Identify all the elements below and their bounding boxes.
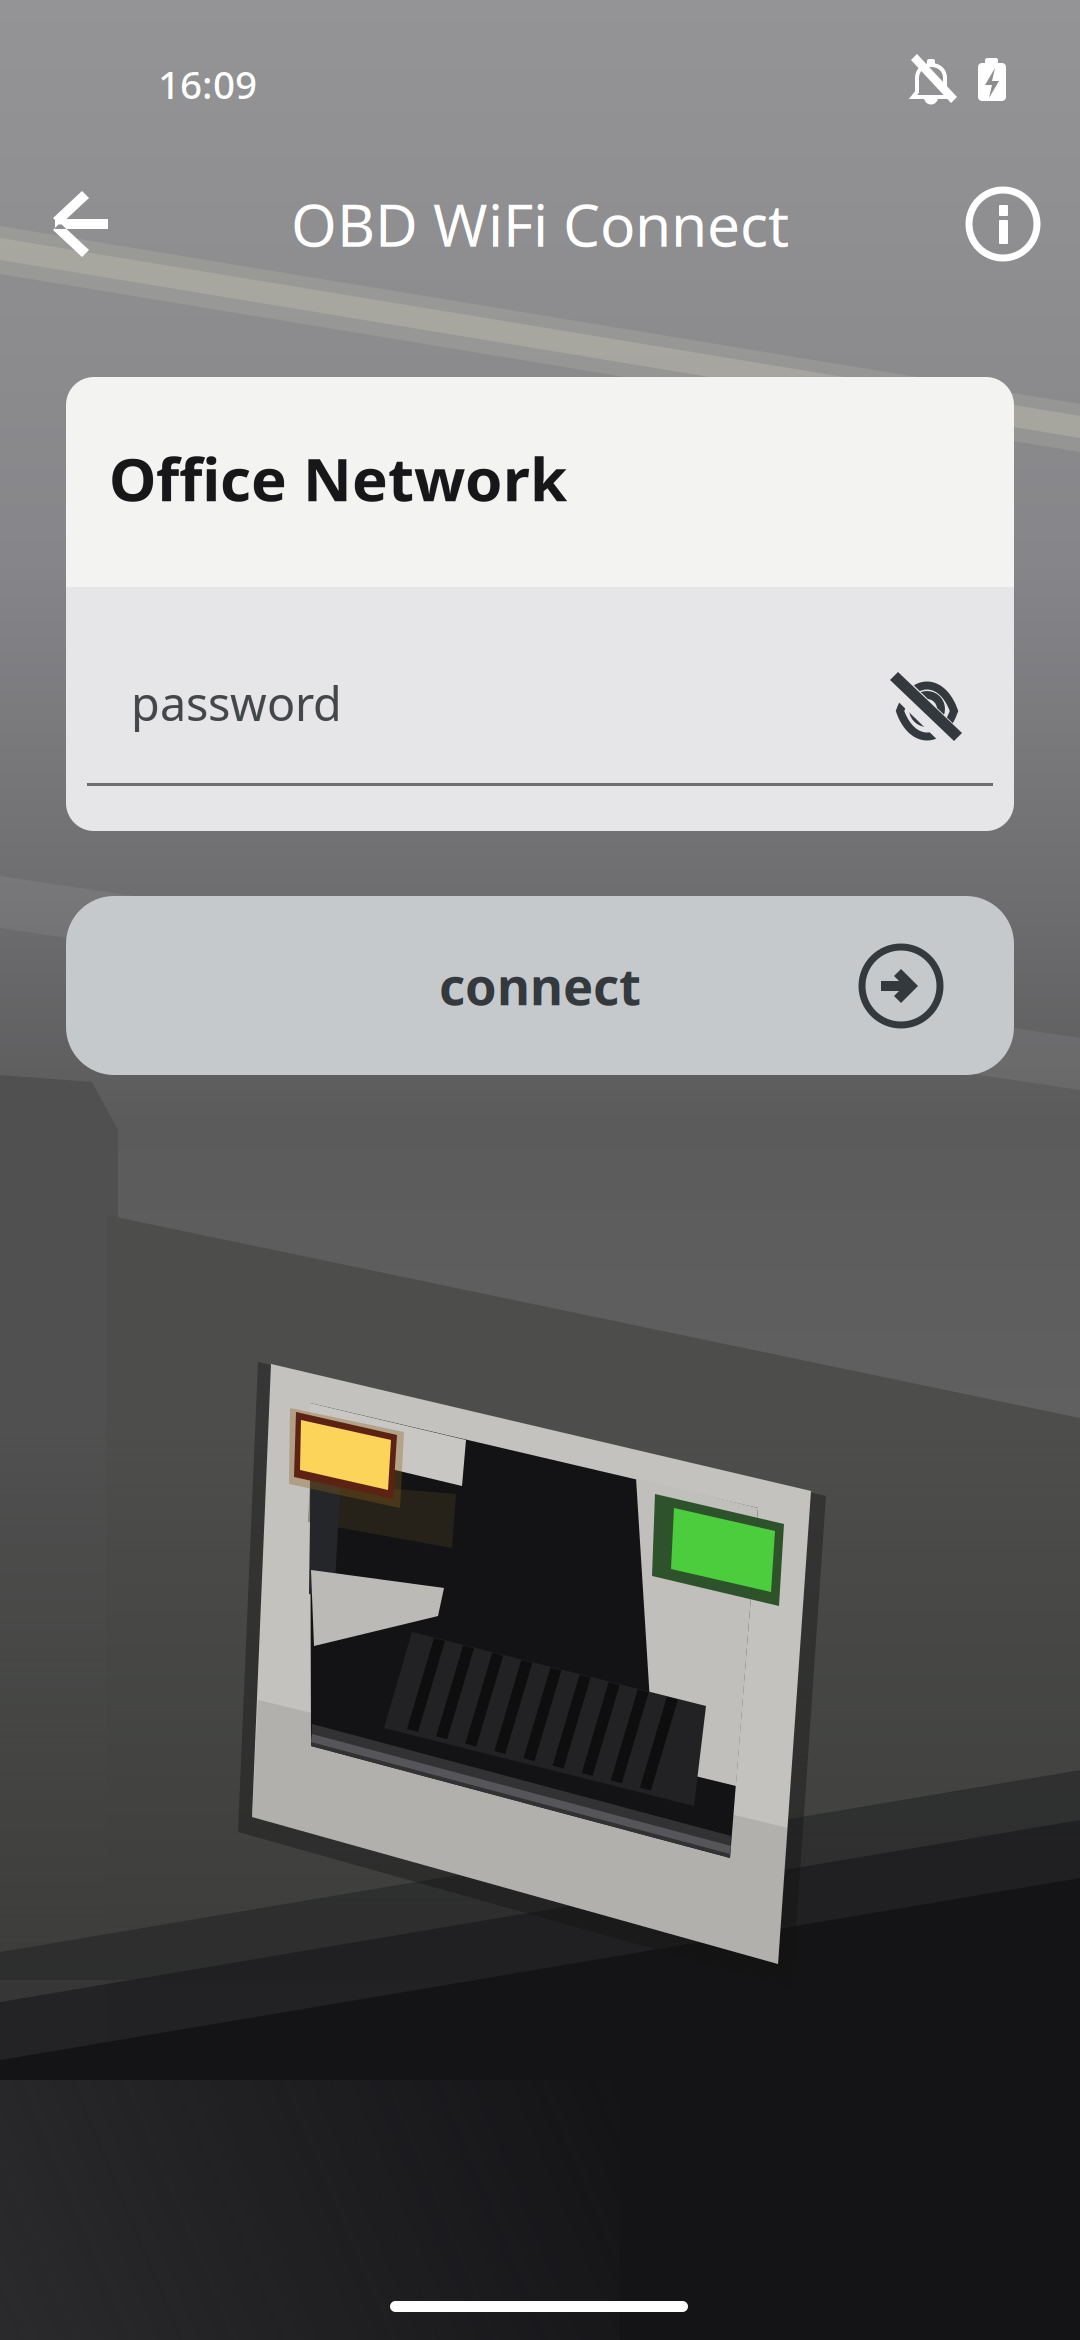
button[interactable]: Information [948, 169, 1058, 279]
staticText: password [131, 672, 342, 734]
button[interactable]: Show password [856, 638, 996, 778]
staticText: connect [439, 952, 641, 1019]
staticText: 16:09 [158, 58, 257, 110]
button[interactable]: connect [66, 896, 1014, 1075]
button[interactable]: Back [22, 169, 132, 279]
staticText: Office Network [109, 438, 567, 518]
staticText: OBD WiFi Connect [291, 185, 789, 263]
